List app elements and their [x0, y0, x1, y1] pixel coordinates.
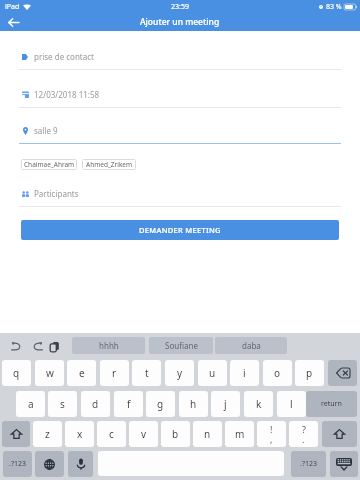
button[interactable]: f — [114, 391, 143, 417]
staticText: u — [209, 366, 216, 380]
staticText: 23:59 — [171, 2, 189, 12]
staticText: Ajouter un meeting — [140, 16, 220, 28]
button[interactable]: i — [230, 360, 259, 386]
button[interactable]: return — [306, 391, 357, 417]
button[interactable]: hhhh — [72, 337, 145, 354]
button[interactable]: w — [35, 360, 64, 386]
staticText: s — [60, 397, 65, 411]
staticText: b — [172, 427, 179, 441]
staticText: j — [224, 397, 227, 411]
button[interactable]: n — [193, 421, 222, 447]
button[interactable]: Copy — [50, 341, 59, 352]
button[interactable]: .?123 — [3, 451, 32, 477]
staticText: w — [46, 366, 54, 380]
staticText: ! — [270, 423, 273, 435]
button[interactable]: z — [33, 421, 62, 447]
staticText: a — [28, 397, 34, 411]
button[interactable]: h — [179, 391, 208, 417]
button[interactable]: prise de contact — [19, 49, 341, 70]
staticText: d — [92, 397, 99, 411]
button[interactable]: Shift — [322, 421, 357, 447]
staticText: g — [157, 397, 164, 411]
button[interactable]: .?123 — [291, 451, 326, 477]
staticText: m — [235, 427, 245, 441]
staticText: Participants — [34, 188, 79, 199]
button[interactable]: e — [67, 360, 96, 386]
staticText: k — [256, 397, 262, 411]
staticText: daba — [242, 340, 261, 351]
staticText: hhhh — [99, 340, 119, 351]
staticText: .?123 — [300, 459, 317, 469]
button[interactable]: o — [263, 360, 292, 386]
staticText: l — [290, 397, 293, 411]
staticText: Soufiane — [165, 340, 198, 351]
button[interactable]: g — [146, 391, 175, 417]
staticText: o — [274, 366, 281, 380]
staticText: e — [79, 366, 85, 380]
button[interactable]: Shift — [2, 421, 30, 447]
button[interactable]: Participants — [19, 186, 341, 207]
button[interactable]: r — [100, 360, 129, 386]
button[interactable]: p — [295, 360, 324, 386]
button[interactable]: x — [65, 421, 94, 447]
button[interactable]: Change keyboard — [35, 451, 64, 477]
staticText: 12/03/2018 11:58 — [34, 89, 100, 100]
button[interactable]: m — [225, 421, 254, 447]
button[interactable]: Soufiane — [149, 337, 213, 354]
staticText: prise de contact — [34, 51, 94, 62]
staticText: DEMANDER MEETING — [139, 225, 221, 235]
button[interactable]: a — [16, 391, 45, 417]
button[interactable]: s — [48, 391, 77, 417]
staticText: salle 9 — [34, 125, 58, 136]
staticText: x — [77, 427, 83, 441]
button[interactable]: Undo — [11, 341, 22, 351]
button[interactable]: c — [97, 421, 126, 447]
staticText: iPad — [5, 2, 20, 12]
button[interactable]: v — [129, 421, 158, 447]
button[interactable]: Hide keyboard — [330, 451, 358, 477]
staticText: .?123 — [9, 459, 26, 469]
staticText: , — [270, 433, 273, 445]
button[interactable]: ! — [257, 421, 286, 447]
button[interactable]: y — [165, 360, 194, 386]
staticText: f — [127, 397, 131, 411]
button[interactable]: q — [2, 360, 31, 386]
button[interactable]: l — [277, 391, 306, 417]
staticText: r — [112, 366, 117, 380]
staticText: . — [302, 433, 305, 445]
staticText: n — [204, 427, 211, 441]
button[interactable]: DEMANDER MEETING — [21, 220, 339, 240]
button[interactable]: k — [244, 391, 273, 417]
staticText: 83 % — [326, 2, 342, 12]
staticText: return — [321, 399, 342, 409]
staticText: y — [177, 366, 183, 380]
button[interactable]: Chaimae_Ahram — [21, 159, 77, 170]
button[interactable]: j — [211, 391, 240, 417]
button[interactable]: Ahmed_Zrikem — [82, 159, 136, 170]
button[interactable]: Backspace — [328, 360, 357, 386]
button[interactable]: Redo — [32, 341, 43, 351]
button[interactable]: Dictation — [68, 451, 93, 477]
button[interactable]: b — [161, 421, 190, 447]
button[interactable]: Back — [0, 13, 26, 31]
staticText: ? — [302, 423, 306, 435]
button[interactable]: salle 9 — [19, 123, 341, 144]
staticText: v — [141, 427, 147, 441]
button[interactable]: ? — [289, 421, 318, 447]
button[interactable]: d — [81, 391, 110, 417]
staticText: Chaimae_Ahram — [24, 160, 75, 169]
button[interactable]: t — [132, 360, 161, 386]
staticText: t — [145, 366, 149, 380]
staticText: Ahmed_Zrikem — [86, 160, 133, 169]
staticText: p — [306, 366, 313, 380]
staticText: h — [190, 397, 197, 411]
staticText: z — [45, 427, 50, 441]
staticText: c — [109, 427, 114, 441]
button[interactable]: 12/03/2018 11:58 — [19, 87, 341, 108]
staticText: i — [243, 366, 246, 380]
button[interactable]: u — [198, 360, 227, 386]
button[interactable]: daba — [215, 337, 287, 354]
staticText: q — [13, 366, 20, 380]
